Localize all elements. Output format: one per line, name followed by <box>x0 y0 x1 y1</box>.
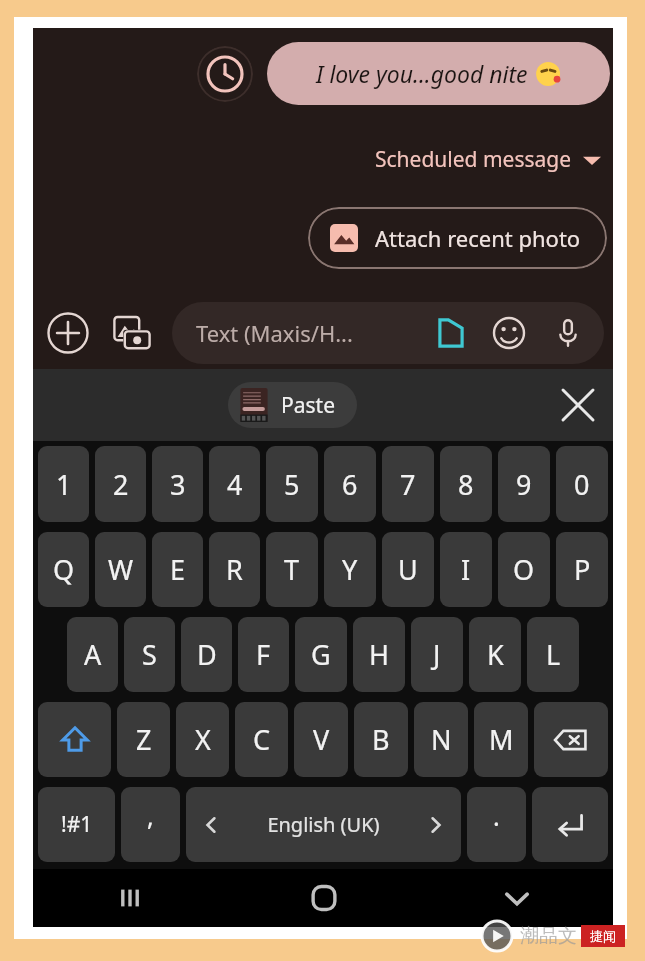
button[interactable]: H <box>353 617 405 692</box>
staticText: Paste <box>281 391 335 420</box>
button[interactable]: S <box>124 617 175 692</box>
staticText: S <box>142 636 157 673</box>
button[interactable]: 1 <box>38 446 89 522</box>
button[interactable]: Y <box>324 532 376 607</box>
button[interactable]: G <box>295 617 347 692</box>
button[interactable]: 5 <box>266 446 318 522</box>
button[interactable]: Hide keyboard <box>420 869 613 927</box>
staticText: L <box>546 636 561 673</box>
button[interactable]: Text (Maxis/H... <box>172 302 604 364</box>
staticText: T <box>284 551 300 588</box>
button[interactable]: M <box>474 702 528 777</box>
staticText: . <box>493 799 500 833</box>
button[interactable]: . <box>467 787 526 862</box>
button[interactable]: E <box>152 532 203 607</box>
staticText: F <box>256 636 271 673</box>
button[interactable]: Shift <box>38 702 111 777</box>
staticText: 7 <box>400 466 416 503</box>
button[interactable]: N <box>414 702 468 777</box>
staticText: 2 <box>113 466 129 503</box>
staticText: English (UK) <box>267 811 380 838</box>
staticText: 9 <box>516 466 532 503</box>
staticText: 潮品文 <box>520 924 577 948</box>
staticText: I love you...good nite <box>316 58 528 89</box>
staticText: B <box>372 721 390 758</box>
button[interactable]: Backspace <box>534 702 608 777</box>
staticText: 3 <box>170 466 186 503</box>
staticText: X <box>195 721 211 758</box>
button[interactable]: Q <box>38 532 89 607</box>
staticText: E <box>170 551 186 588</box>
button[interactable]: P <box>556 532 608 607</box>
staticText: W <box>108 551 134 588</box>
staticText: H <box>369 636 390 673</box>
staticText: 8 <box>458 466 474 503</box>
button[interactable]: 3 <box>152 446 203 522</box>
button[interactable]: U <box>382 532 434 607</box>
button[interactable]: A <box>67 617 118 692</box>
staticText: G <box>311 636 331 673</box>
button[interactable]: Home <box>227 869 420 927</box>
button[interactable]: 8 <box>440 446 492 522</box>
button[interactable]: 7 <box>382 446 434 522</box>
button[interactable]: V <box>294 702 348 777</box>
button[interactable]: 2 <box>95 446 146 522</box>
button[interactable]: 0 <box>556 446 608 522</box>
button[interactable]: T <box>266 532 318 607</box>
button[interactable]: 6 <box>324 446 376 522</box>
button[interactable]: Gallery <box>106 307 158 359</box>
staticText: R <box>226 551 243 588</box>
staticText: O <box>513 551 535 588</box>
button[interactable]: Add <box>42 307 94 359</box>
button[interactable]: English (UK) <box>186 787 461 862</box>
staticText: J <box>433 636 441 673</box>
button[interactable]: J <box>411 617 463 692</box>
staticText: 6 <box>342 466 358 503</box>
button[interactable]: Paste <box>228 382 357 428</box>
button[interactable]: L <box>527 617 579 692</box>
button[interactable]: O <box>498 532 550 607</box>
staticText: N <box>431 721 452 758</box>
button[interactable]: Scheduled <box>197 46 253 102</box>
button[interactable]: Scheduled message <box>371 142 605 177</box>
button[interactable]: X <box>176 702 229 777</box>
staticText: !#1 <box>61 810 93 839</box>
staticText: A <box>84 636 102 673</box>
button[interactable]: Attach recent photo <box>308 207 607 269</box>
button[interactable]: C <box>235 702 288 777</box>
staticText: Attach recent photo <box>375 223 581 253</box>
button[interactable]: D <box>181 617 232 692</box>
button[interactable]: 9 <box>498 446 550 522</box>
staticText: D <box>197 636 217 673</box>
button[interactable]: Z <box>117 702 170 777</box>
staticText: P <box>574 551 591 588</box>
button[interactable]: !#1 <box>38 787 115 862</box>
button[interactable]: K <box>469 617 521 692</box>
button[interactable]: I love you...good nite <box>267 42 610 105</box>
staticText: U <box>398 551 418 588</box>
staticText: 1 <box>56 466 72 503</box>
staticText: M <box>489 721 514 758</box>
staticText: Scheduled message <box>375 145 572 174</box>
staticText: 0 <box>574 466 590 503</box>
staticText: 捷闻 <box>590 928 616 944</box>
staticText: , <box>147 799 154 833</box>
staticText: V <box>313 721 330 758</box>
button[interactable]: Recents <box>33 869 227 927</box>
button[interactable]: , <box>121 787 180 862</box>
button[interactable]: I <box>440 532 492 607</box>
staticText: I <box>461 551 471 588</box>
button[interactable]: Close <box>553 380 603 430</box>
button[interactable]: B <box>354 702 408 777</box>
staticText: Text (Maxis/H... <box>196 318 353 348</box>
staticText: Q <box>53 551 75 588</box>
button[interactable]: 4 <box>209 446 260 522</box>
button[interactable]: W <box>95 532 146 607</box>
staticText: 5 <box>284 466 300 503</box>
staticText: Y <box>342 551 358 588</box>
button[interactable]: Enter <box>532 787 608 862</box>
button[interactable]: F <box>238 617 289 692</box>
button[interactable]: R <box>209 532 260 607</box>
staticText: K <box>487 636 504 673</box>
staticText: C <box>253 721 271 758</box>
